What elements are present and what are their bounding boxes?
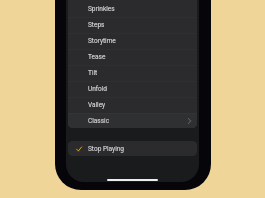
staticText: Sprinkles: [88, 5, 115, 13]
staticText: Stop Playing: [88, 145, 124, 153]
staticText: Steps: [88, 21, 105, 29]
staticText: Classic: [88, 117, 110, 125]
staticText: Valley: [88, 101, 106, 109]
staticText: Tilt: [88, 69, 98, 77]
button[interactable]: Steps: [68, 17, 197, 33]
staticText: Storytime: [88, 37, 116, 45]
button[interactable]: Valley: [68, 97, 197, 113]
button[interactable]: Storytime: [68, 33, 197, 49]
staticText: Unfold: [88, 85, 108, 93]
button[interactable]: Tilt: [68, 65, 197, 81]
other: More options: [188, 118, 191, 124]
button[interactable]: Classic: [68, 113, 197, 128]
button[interactable]: Sprinkles: [68, 1, 197, 17]
staticText: Tease: [88, 53, 106, 61]
button[interactable]: Tease: [68, 49, 197, 65]
button[interactable]: Unfold: [68, 81, 197, 97]
button[interactable]: Stop Playing: [68, 141, 197, 156]
